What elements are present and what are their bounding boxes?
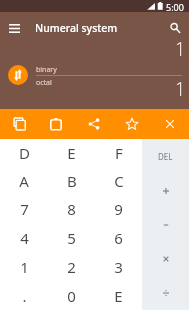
button[interactable]: 3 xyxy=(95,252,142,281)
button[interactable]: C xyxy=(95,167,142,195)
button[interactable]: . xyxy=(0,281,48,310)
staticText: DEL xyxy=(158,151,173,162)
button[interactable]: 8 xyxy=(48,195,95,223)
button[interactable]: F xyxy=(95,139,142,167)
button[interactable]: 4 xyxy=(0,223,48,252)
button[interactable]: 2 xyxy=(48,252,95,281)
button[interactable]: ÷ xyxy=(142,276,189,310)
staticText: . xyxy=(22,286,27,306)
staticText: 3 xyxy=(114,257,123,277)
button[interactable]: Close xyxy=(151,109,189,139)
staticText: D xyxy=(19,143,30,163)
staticText: A xyxy=(19,171,29,191)
staticText: C xyxy=(114,171,124,191)
button[interactable]: 9 xyxy=(95,195,142,223)
button[interactable]: B xyxy=(48,167,95,195)
button[interactable]: Paste xyxy=(37,109,75,139)
staticText: 5 xyxy=(67,228,76,248)
button[interactable]: Search xyxy=(161,15,187,41)
button[interactable]: 5 xyxy=(48,223,95,252)
button[interactable]: + xyxy=(142,174,189,208)
staticText: F xyxy=(115,143,123,163)
button[interactable]: × xyxy=(142,242,189,276)
button[interactable]: − xyxy=(142,208,189,242)
staticText: 5:00 xyxy=(166,1,184,13)
button[interactable]: Copy xyxy=(0,109,37,139)
staticText: 7 xyxy=(20,199,29,219)
staticText: B xyxy=(67,171,77,191)
staticText: Numeral system xyxy=(35,21,118,35)
staticText: 1 xyxy=(20,257,29,277)
button[interactable]: octal xyxy=(36,76,182,109)
staticText: 2 xyxy=(67,257,76,277)
staticText: 6 xyxy=(114,228,123,248)
staticText: 4 xyxy=(20,228,29,248)
staticText: octal xyxy=(36,78,52,88)
button[interactable]: E xyxy=(95,281,142,310)
button[interactable]: binary xyxy=(36,44,182,75)
button[interactable]: Swap xyxy=(8,65,28,85)
staticText: 0 xyxy=(67,286,76,306)
button[interactable]: A xyxy=(0,167,48,195)
button[interactable]: E xyxy=(48,139,95,167)
button[interactable]: 0 xyxy=(48,281,95,310)
staticText: 8 xyxy=(67,199,76,219)
button[interactable]: 6 xyxy=(95,223,142,252)
staticText: 9 xyxy=(114,199,123,219)
button[interactable]: DEL xyxy=(142,139,189,174)
button[interactable]: Navigation menu xyxy=(1,15,27,41)
button[interactable]: D xyxy=(0,139,48,167)
button[interactable]: Favorite xyxy=(113,109,151,139)
staticText: E xyxy=(67,143,76,163)
button[interactable]: Share xyxy=(75,109,113,139)
staticText: E xyxy=(114,286,123,306)
button[interactable]: 1 xyxy=(0,252,48,281)
staticText: binary xyxy=(36,65,57,75)
button[interactable]: 7 xyxy=(0,195,48,223)
